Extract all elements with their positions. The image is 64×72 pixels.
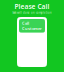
staticText: Task will close on completion	[12, 11, 52, 14]
staticText: Call Customer	[22, 20, 42, 31]
staticText: Please Call	[14, 2, 49, 11]
